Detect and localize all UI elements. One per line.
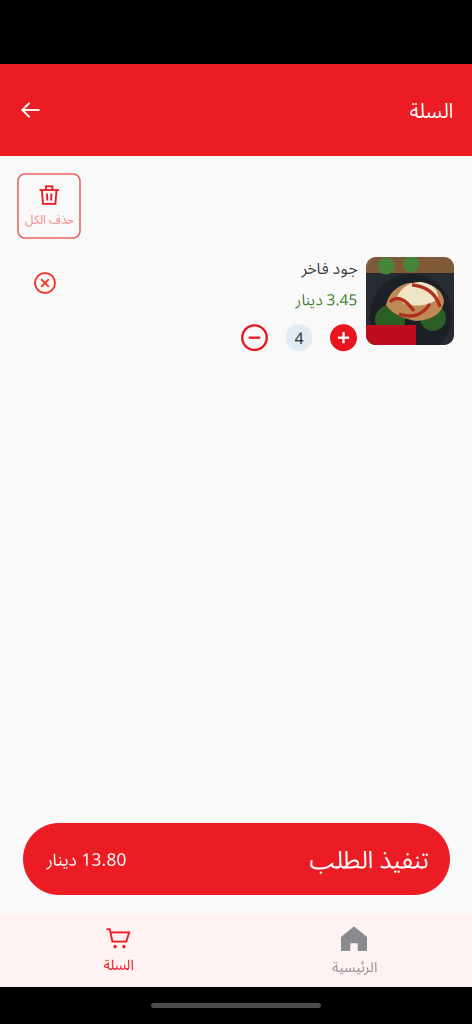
button[interactable]: Decrease quantity [241,324,268,351]
staticText: تنفيذ الطلب [309,842,428,876]
staticText: السلة [103,954,133,974]
button[interactable]: Remove item [28,266,62,300]
staticText: 13.80 دينار [46,847,126,871]
staticText: جود فاخر [301,257,357,279]
button[interactable]: حذف الكل [18,174,80,238]
staticText: السلة [409,96,453,124]
staticText: الرئيسية [331,957,376,976]
button[interactable]: السلة [0,915,236,987]
staticText: حذف الكل [24,211,73,227]
staticText: 3.45 دينار [295,289,357,310]
button[interactable]: Increase quantity [330,324,357,351]
button[interactable]: 13.80 دينار [23,823,450,895]
staticText: 4 [294,327,303,349]
button[interactable]: الرئيسية [236,915,472,987]
button[interactable]: Back [9,88,53,132]
